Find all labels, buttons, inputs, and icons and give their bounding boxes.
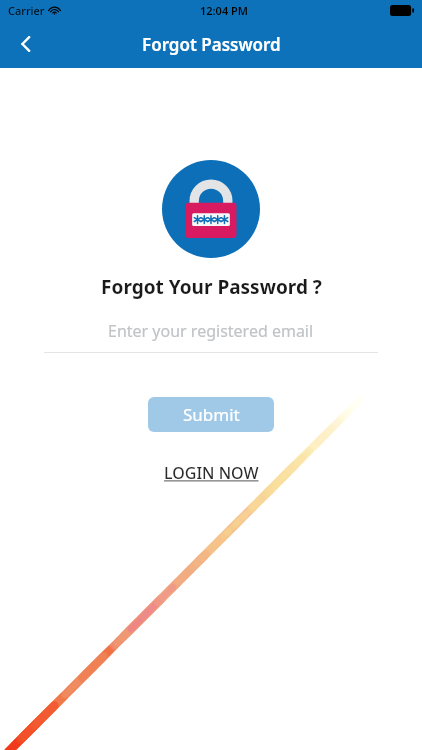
staticText: 12:04 PM: [200, 3, 249, 18]
staticText: Submit: [183, 403, 240, 426]
button[interactable]: Back: [6, 24, 46, 64]
button[interactable]: Submit: [148, 397, 274, 432]
staticText: Carrier: [8, 3, 45, 18]
staticText: Forgot Password: [142, 33, 281, 56]
staticText: Enter your registered email: [108, 320, 314, 342]
staticText: LOGIN NOW: [164, 462, 259, 484]
staticText: Forgot Your Password ?: [101, 274, 322, 300]
button[interactable]: LOGIN NOW: [154, 456, 269, 490]
button[interactable]: Enter your registered email: [44, 318, 378, 353]
